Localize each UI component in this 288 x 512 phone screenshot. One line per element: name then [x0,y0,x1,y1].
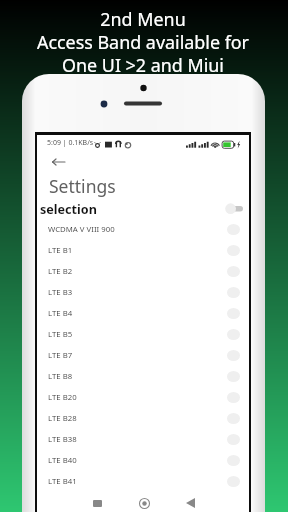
button[interactable]: LTE B1 [37,240,249,261]
button[interactable]: LTE B7 [37,345,249,366]
button[interactable]: LTE B4 [37,303,249,324]
staticText: Settings [49,174,116,198]
button[interactable]: Back [48,151,70,173]
button[interactable]: LTE B8 [37,366,249,387]
staticText: LTE B28 [48,413,77,424]
staticText: LTE B4 [48,308,73,319]
staticText: 5:09 | 0.1KB/s [47,138,94,148]
staticText: LTE B7 [48,350,73,361]
button[interactable]: LTE B5 [37,324,249,345]
staticText: LTE B38 [48,434,77,445]
staticText: LTE B5 [48,329,73,340]
button[interactable]: Back [179,492,201,512]
button[interactable]: Home [133,492,155,512]
staticText: LTE B41 [48,476,77,487]
button[interactable]: Recents [86,492,108,512]
staticText: LTE B8 [48,371,73,382]
staticText: WCDMA V VIII 900 [48,224,115,235]
button[interactable]: LTE B2 [37,261,249,282]
staticText: 2nd Menu Access Band available for One U… [0,7,287,77]
staticText: LTE B1 [48,245,73,256]
button[interactable]: selection [37,198,249,220]
button[interactable]: LTE B41 [37,471,249,492]
button[interactable]: LTE B40 [37,450,249,471]
staticText: LTE B20 [48,392,77,403]
button[interactable]: WCDMA V VIII 900 [37,219,249,240]
staticText: selection [40,201,97,218]
staticText: LTE B40 [48,455,77,466]
button[interactable]: LTE B20 [37,387,249,408]
staticText: LTE B3 [48,287,73,298]
button[interactable]: LTE B3 [37,282,249,303]
button[interactable]: LTE B28 [37,408,249,429]
button[interactable]: LTE B38 [37,429,249,450]
staticText: LTE B2 [48,266,73,277]
